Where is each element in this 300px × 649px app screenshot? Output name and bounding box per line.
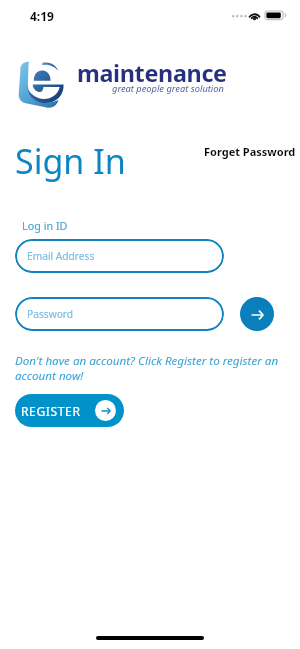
staticText: 4:19	[30, 8, 54, 24]
staticText: Sign In	[15, 138, 126, 184]
staticText: Forget Password	[204, 144, 296, 159]
staticText: maintenance	[77, 57, 227, 89]
button[interactable]: Email Address	[15, 239, 224, 273]
staticText: Email Address	[27, 249, 95, 263]
staticText: great people great solution	[112, 82, 224, 95]
button[interactable]: Sign in	[240, 297, 274, 331]
button[interactable]: Password	[15, 297, 224, 331]
staticText: Don't have an account? Click Register to…	[15, 353, 291, 384]
staticText: REGISTER	[21, 403, 81, 419]
staticText: Password	[27, 307, 74, 321]
staticText: Log in ID	[22, 218, 68, 233]
button[interactable]: Forget Password	[198, 138, 300, 165]
button[interactable]: REGISTER	[15, 394, 124, 427]
